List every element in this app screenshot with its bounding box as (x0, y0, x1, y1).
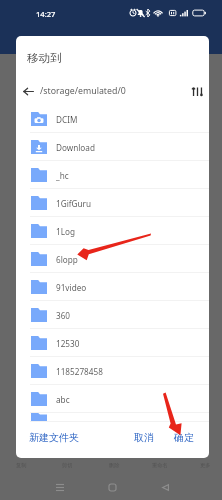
staticText: 1GifGuru (56, 198, 92, 209)
staticText: /storage/emulated/0 (40, 85, 126, 97)
staticText: 6lopp (56, 254, 78, 265)
button[interactable]: Recent apps (38, 474, 82, 500)
button[interactable]: _hc (16, 161, 209, 189)
button[interactable]: Download (16, 133, 209, 161)
staticText: 1Log (56, 226, 75, 237)
staticText: 360 (56, 310, 71, 321)
staticText: 取消 (134, 431, 154, 444)
button[interactable]: Up one level (16, 82, 40, 100)
staticText: 重命名 (152, 462, 168, 469)
staticText: 删除 (109, 462, 120, 469)
staticText: 更多 (200, 462, 211, 469)
button[interactable]: 新建文件夹 (23, 426, 85, 449)
button[interactable]: 取消 (128, 426, 160, 449)
button[interactable]: 1Log (16, 217, 209, 245)
staticText: 12530 (56, 338, 80, 349)
staticText: 新建文件夹 (29, 431, 79, 444)
button[interactable]: 6lopp (16, 245, 209, 273)
staticText: abc (56, 394, 70, 405)
staticText: 复制 (16, 462, 27, 469)
button[interactable]: 360 (16, 301, 209, 329)
button[interactable] (16, 413, 209, 422)
staticText: Download (56, 142, 95, 153)
button[interactable]: 1GifGuru (16, 189, 209, 217)
staticText: 移动到 (27, 51, 62, 65)
button[interactable]: abc (16, 385, 209, 413)
button[interactable]: Sort (185, 82, 209, 100)
button[interactable]: 91video (16, 273, 209, 301)
button[interactable]: DCIM (16, 105, 209, 133)
staticText: 1185278458 (56, 366, 103, 377)
staticText: 91video (56, 282, 87, 293)
button[interactable]: 1185278458 (16, 357, 209, 385)
staticText: 14:27 (36, 9, 56, 19)
staticText: 确定 (174, 431, 194, 444)
staticText: 剪切 (62, 462, 73, 469)
button[interactable]: 确定 (168, 426, 200, 449)
staticText: DCIM (56, 114, 78, 125)
staticText: _hc (56, 170, 69, 181)
button[interactable]: 12530 (16, 329, 209, 357)
button[interactable]: Back (143, 474, 187, 500)
button[interactable]: Home (90, 474, 134, 500)
